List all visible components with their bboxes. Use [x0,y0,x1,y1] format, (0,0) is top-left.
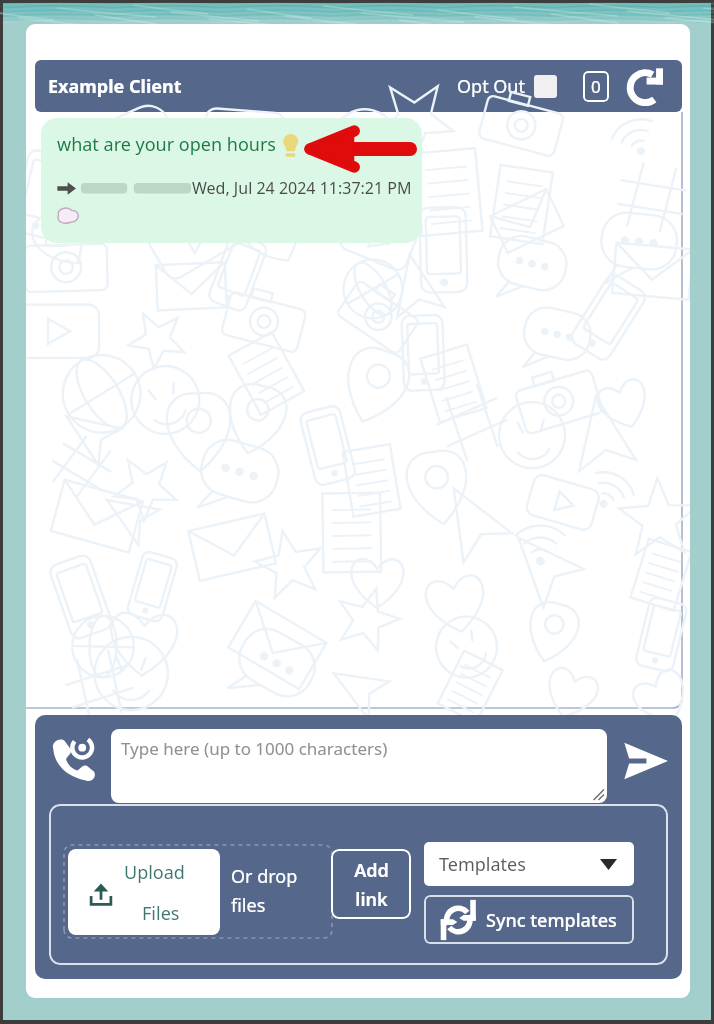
button[interactable]: Opt Out [455,68,559,105]
staticText: Templates [439,852,526,877]
staticText: Or drop files [231,864,298,917]
staticText: Add link [354,858,389,911]
staticText: Files [142,901,180,926]
button[interactable]: Upload [64,845,332,938]
staticText: Wed, Jul 24 2024 11:37:21 PM [192,177,412,199]
staticText: Example Client [48,74,182,99]
button[interactable]: Type here (up to 1000 characters) [111,729,607,803]
button[interactable]: Unread count [583,71,609,102]
button[interactable]: Sync templates [424,895,634,944]
staticText: Upload [124,860,185,885]
button[interactable]: Send [616,733,674,789]
button[interactable]: Voice call [44,729,102,787]
button[interactable]: Refresh [625,63,669,109]
button[interactable]: what are your open hours [41,118,422,243]
button[interactable]: Upload [68,849,220,935]
button[interactable]: Add link [331,849,411,919]
staticText: Sync templates [486,908,617,933]
button[interactable]: Templates [424,842,634,886]
staticText: what are your open hours [57,132,276,157]
staticText: Opt Out [457,74,525,99]
staticText: 0 [591,75,601,98]
staticText: Type here (up to 1000 characters) [121,737,388,760]
